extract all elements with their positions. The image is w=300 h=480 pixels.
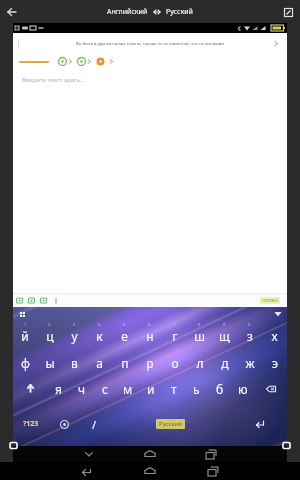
staticText: ш (194, 328, 205, 344)
staticText: т (171, 381, 177, 397)
staticText: м (123, 381, 133, 397)
button[interactable]: ь (185, 375, 208, 402)
button[interactable]: в (62, 348, 87, 375)
staticText: ф (21, 355, 30, 371)
staticText: и (147, 381, 155, 397)
staticText: п (121, 355, 129, 371)
button[interactable]: 3 (62, 321, 87, 348)
button[interactable]: Action (39, 296, 48, 305)
button[interactable]: Back (78, 462, 96, 480)
button[interactable]: Translate (96, 57, 105, 66)
staticText: л (196, 355, 204, 371)
staticText: 7 (173, 322, 176, 327)
staticText: 9 (223, 322, 226, 327)
button[interactable]: р (137, 348, 162, 375)
button[interactable]: Dictionary (77, 57, 86, 66)
staticText: ж (245, 355, 255, 371)
staticText: й (21, 328, 29, 344)
button[interactable]: 4 (87, 321, 112, 348)
button[interactable]: Back (4, 4, 20, 20)
staticText: у (71, 328, 78, 344)
button[interactable]: Shift (13, 375, 47, 402)
staticText: ю (238, 381, 248, 397)
staticText: 0 (248, 322, 251, 327)
button[interactable]: м (116, 375, 139, 402)
button[interactable]: с (93, 375, 116, 402)
button[interactable]: 5 (112, 321, 137, 348)
button[interactable]: 9 (212, 321, 237, 348)
button[interactable]: ы (37, 348, 62, 375)
button[interactable]: л (187, 348, 212, 375)
button[interactable]: Enter (232, 402, 287, 446)
button[interactable]: Вы были в другом городе страны, города т… (13, 35, 287, 51)
button[interactable]: Action (27, 296, 36, 305)
staticText: е (121, 328, 128, 344)
staticText: я (55, 381, 62, 397)
staticText: ы (45, 355, 55, 371)
button[interactable]: More options (51, 296, 60, 305)
button[interactable]: т (162, 375, 185, 402)
staticText: ц (46, 328, 54, 344)
button[interactable]: э (262, 348, 287, 375)
button[interactable]: п (112, 348, 137, 375)
staticText: Вы были в другом городе страны, города т… (76, 41, 225, 46)
button[interactable]: ф (13, 348, 37, 375)
button[interactable]: ч (70, 375, 93, 402)
button[interactable]: 6 (137, 321, 162, 348)
button[interactable]: 2 (37, 321, 62, 348)
staticText: 4 (98, 322, 101, 327)
staticText: з (247, 328, 253, 344)
button[interactable]: Dictionary (58, 57, 67, 66)
staticText: 3 (73, 322, 76, 327)
staticText: с (102, 381, 108, 397)
button[interactable]: х (262, 321, 287, 348)
staticText: к (96, 328, 103, 344)
staticText: 8 (198, 322, 201, 327)
staticText: Введите текст здесь... (22, 76, 85, 84)
staticText: б (216, 381, 224, 397)
staticText: а (96, 355, 103, 371)
staticText: 2 (48, 322, 51, 327)
button[interactable]: б (208, 375, 231, 402)
button[interactable]: 7 (162, 321, 187, 348)
staticText: р (146, 355, 154, 371)
button[interactable]: Change keyboard (49, 402, 80, 446)
button[interactable]: Keyboard options (17, 309, 27, 319)
button[interactable]: 1 (13, 321, 37, 348)
button[interactable]: Screenshot (282, 441, 291, 450)
button[interactable]: ?123 (13, 402, 49, 446)
staticText: ГОТОВО (262, 298, 278, 303)
button[interactable]: Screenshot (9, 441, 18, 450)
button[interactable]: ГОТОВО (260, 297, 280, 304)
staticText: 5 (123, 322, 126, 327)
button[interactable]: Home (142, 446, 158, 462)
staticText: н (146, 328, 154, 344)
button[interactable]: Home (141, 462, 159, 480)
staticText: 6 (148, 322, 151, 327)
button[interactable]: Hide keyboard (81, 446, 97, 462)
staticText: в (71, 355, 78, 371)
staticText: г (172, 328, 178, 344)
button[interactable]: д (212, 348, 237, 375)
button[interactable]: / (80, 402, 108, 446)
button[interactable]: Hide keyboard (273, 309, 283, 319)
button[interactable]: Exit full screen (280, 4, 296, 20)
button[interactable]: а (87, 348, 112, 375)
staticText: 1 (24, 322, 27, 327)
button[interactable]: 0 (237, 321, 262, 348)
staticText: ь (193, 381, 200, 397)
button[interactable]: Backspace (254, 375, 287, 402)
button[interactable]: 8 (187, 321, 212, 348)
button[interactable]: Recents (204, 462, 222, 480)
button[interactable]: о (162, 348, 187, 375)
button[interactable]: ю (231, 375, 254, 402)
button[interactable]: я (47, 375, 70, 402)
staticText: ч (78, 381, 86, 397)
button[interactable]: Reverso (19, 59, 49, 65)
button[interactable]: Recents (203, 446, 219, 462)
button[interactable]: Русский (108, 402, 232, 446)
button[interactable]: Action (15, 296, 24, 305)
button[interactable]: ж (237, 348, 262, 375)
staticText: Русский (166, 7, 193, 17)
button[interactable]: и (139, 375, 162, 402)
